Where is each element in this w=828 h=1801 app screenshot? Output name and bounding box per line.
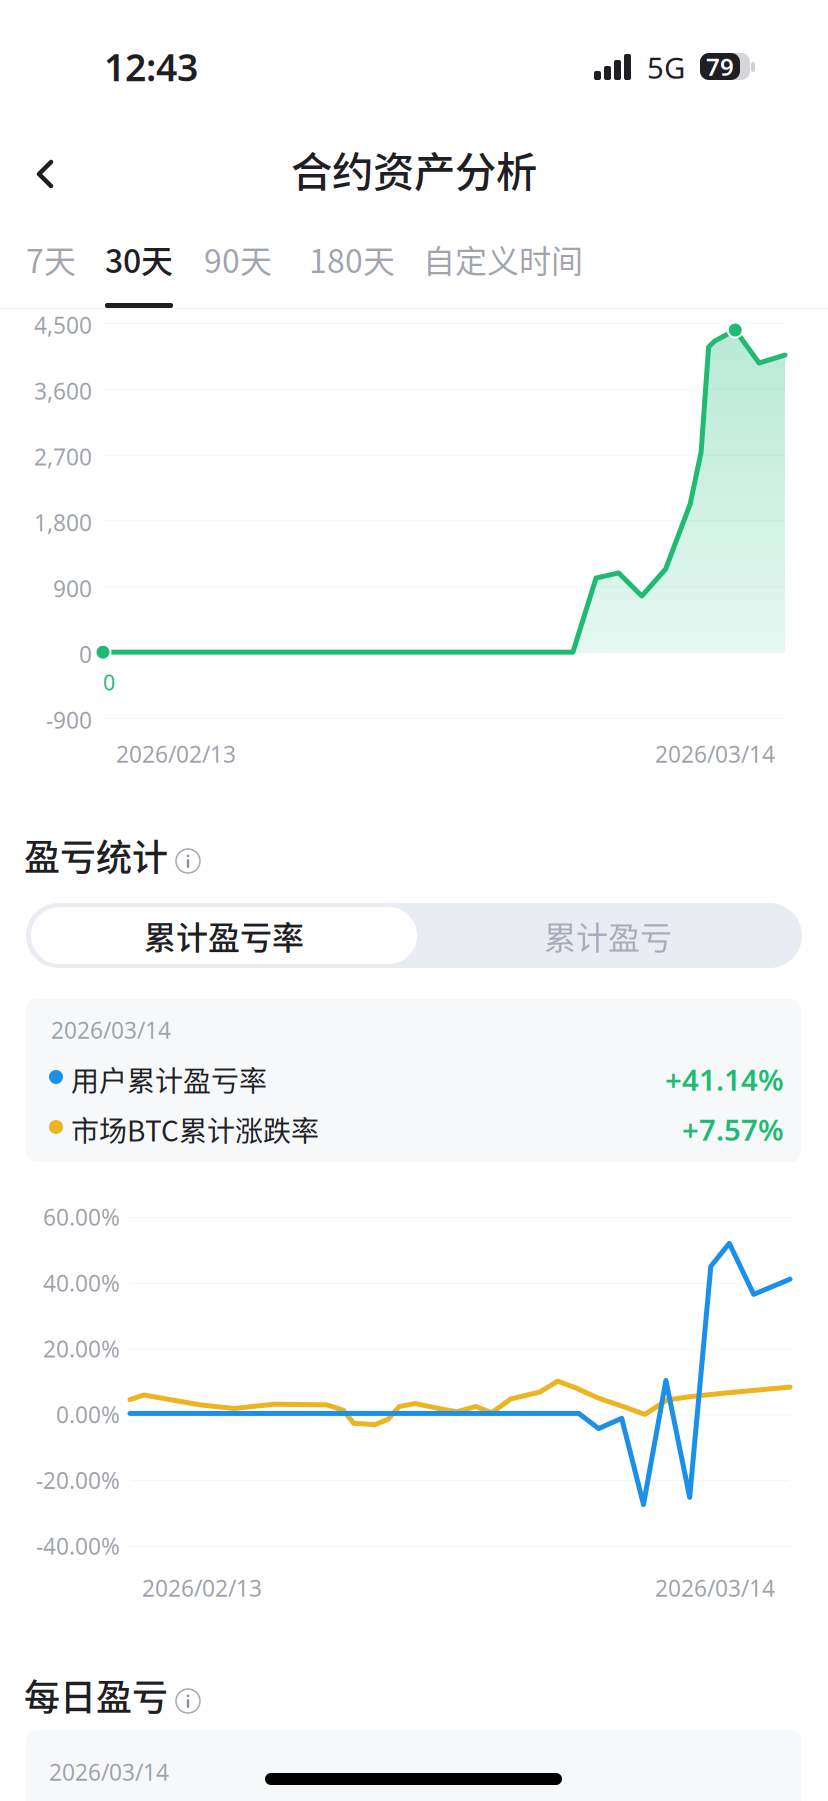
staticText: 2,700 <box>34 442 92 472</box>
staticText: +41.14% <box>665 1060 784 1099</box>
staticText: 2026/02/13 <box>116 739 236 769</box>
staticText: -900 <box>46 705 92 735</box>
staticText: 40.00% <box>43 1268 120 1298</box>
staticText: 0 <box>103 668 115 696</box>
staticText: 7天 <box>26 236 76 282</box>
staticText: 30天 <box>105 236 173 282</box>
staticText: 2026/03/14 <box>49 1757 169 1787</box>
staticText: 1,800 <box>34 507 92 538</box>
staticText: 5G <box>647 48 685 87</box>
staticText: 4,500 <box>34 310 92 340</box>
staticText: 3,600 <box>34 376 92 406</box>
staticText: 900 <box>53 573 92 603</box>
staticText: -20.00% <box>36 1465 120 1495</box>
staticText: 盈亏统计 <box>24 829 168 881</box>
staticText: 20.00% <box>43 1334 120 1364</box>
staticText: 累计盈亏率 <box>144 912 304 959</box>
staticText: 180天 <box>309 236 395 282</box>
staticText: 90天 <box>204 236 272 282</box>
staticText: +7.57% <box>682 1110 784 1149</box>
staticText: 市场BTC累计涨跌率 <box>71 1109 319 1149</box>
button[interactable]: 30天 <box>102 226 176 300</box>
staticText: 2026/03/14 <box>51 1015 171 1045</box>
staticText: 60.00% <box>43 1202 120 1232</box>
button[interactable]: Back <box>10 139 80 209</box>
staticText: 79 <box>706 51 734 82</box>
staticText: 2026/03/14 <box>655 739 775 769</box>
staticText: 2026/03/14 <box>655 1573 775 1603</box>
button[interactable]: 90天 <box>201 226 275 300</box>
staticText: 用户累计盈亏率 <box>71 1059 267 1099</box>
staticText: 2026/02/13 <box>142 1573 262 1603</box>
staticText: 累计盈亏 <box>544 912 672 959</box>
button[interactable]: 累计盈亏 <box>418 907 798 964</box>
staticText: 合约资产分析 <box>291 139 537 199</box>
staticText: 自定义时间 <box>423 236 583 282</box>
button[interactable]: 7天 <box>23 226 79 300</box>
staticText: -40.00% <box>36 1531 120 1561</box>
staticText: 每日盈亏 <box>24 1669 168 1721</box>
staticText: 12:43 <box>104 42 198 92</box>
staticText: 0.00% <box>56 1399 120 1429</box>
button[interactable]: 累计盈亏率 <box>31 907 417 964</box>
button[interactable]: 自定义时间 <box>420 226 586 300</box>
staticText: 0 <box>79 639 92 669</box>
button[interactable]: 180天 <box>306 226 398 300</box>
